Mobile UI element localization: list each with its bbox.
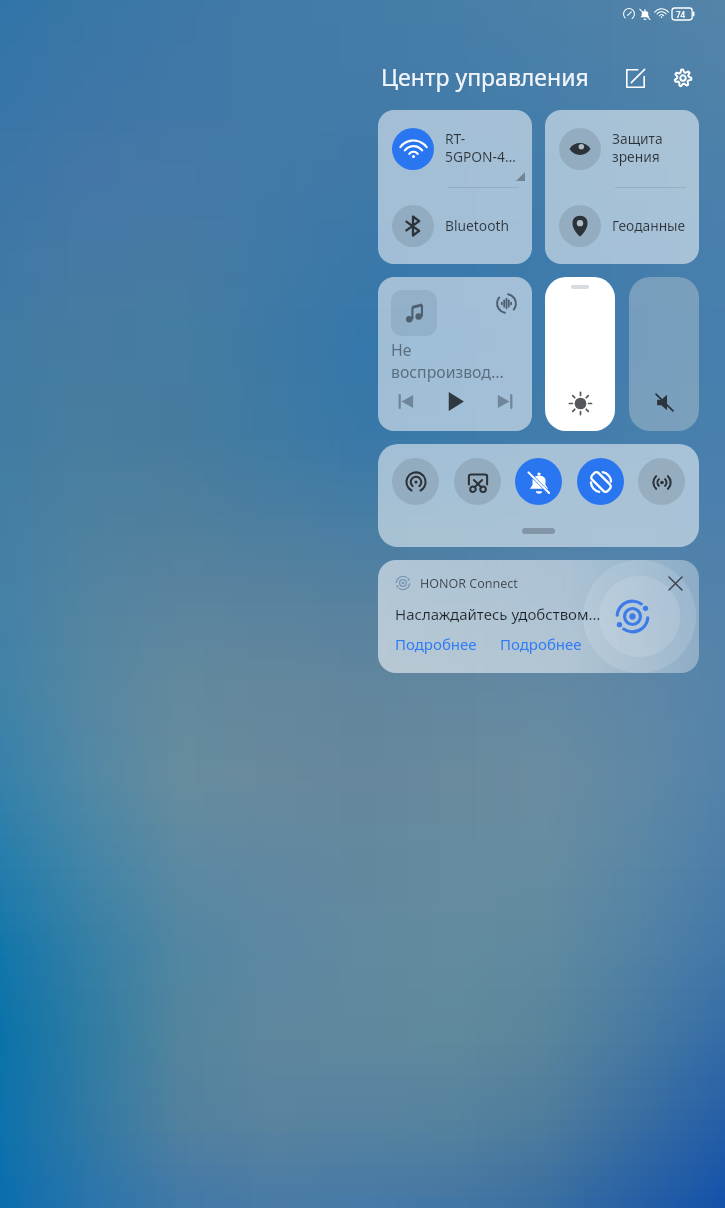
button[interactable]: Cast bbox=[378, 277, 532, 431]
button[interactable]: Подробнее bbox=[500, 634, 582, 654]
button[interactable]: Hotspot bbox=[392, 458, 439, 505]
button[interactable]: Previous bbox=[391, 387, 419, 415]
button[interactable]: RT- 5GPON-4… bbox=[378, 110, 532, 187]
button[interactable]: NFC bbox=[638, 458, 685, 505]
button[interactable]: Next bbox=[491, 387, 519, 415]
button[interactable]: Cast bbox=[493, 290, 519, 316]
staticText: Защита зрения bbox=[612, 129, 663, 166]
staticText: Не воспроизвод… bbox=[391, 339, 519, 383]
button[interactable]: Подробнее bbox=[395, 634, 477, 654]
button[interactable]: Геоданные bbox=[545, 188, 699, 264]
button[interactable]: Edit bbox=[619, 62, 651, 94]
button[interactable]: Close bbox=[663, 571, 687, 595]
button[interactable]: Auto-rotate bbox=[577, 458, 624, 505]
staticText: HONOR Connect bbox=[420, 575, 518, 592]
staticText: Центр управления bbox=[381, 61, 589, 92]
staticText: Наслаждайтесь удобством… bbox=[395, 604, 601, 624]
button[interactable]: Settings bbox=[667, 62, 699, 94]
staticText: Геоданные bbox=[612, 216, 686, 235]
button[interactable]: Play bbox=[440, 386, 470, 416]
staticText: RT- 5GPON-4… bbox=[445, 129, 516, 166]
staticText: 74 bbox=[676, 9, 686, 20]
button[interactable]: Silent bbox=[515, 458, 562, 505]
button[interactable]: HONOR Connect bbox=[378, 560, 699, 673]
staticText: Bluetooth bbox=[445, 216, 510, 235]
button[interactable]: Volume bbox=[629, 277, 699, 431]
button[interactable]: Защита зрения bbox=[545, 110, 699, 187]
button[interactable]: Screenshot bbox=[454, 458, 501, 505]
button[interactable]: Bluetooth bbox=[378, 188, 532, 264]
button[interactable]: Brightness bbox=[545, 277, 615, 431]
other: HONOR Connect bbox=[614, 598, 651, 635]
